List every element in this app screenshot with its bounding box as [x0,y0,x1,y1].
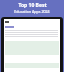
staticText: Education Apps 2024 [14,9,50,14]
staticText: Top 10 Best [18,2,47,9]
